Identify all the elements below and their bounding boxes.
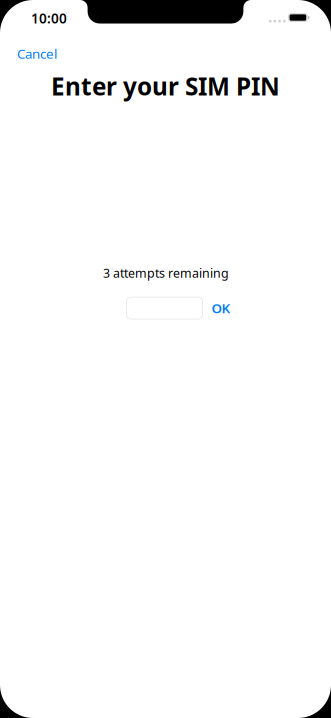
button[interactable]: SIM PIN (126, 297, 202, 319)
staticText: Cancel (17, 44, 57, 63)
staticText: 3 attempts remaining (103, 265, 229, 281)
staticText: 10:00 (31, 9, 67, 27)
button[interactable]: OK (202, 293, 240, 323)
staticText: Enter your SIM PIN (51, 69, 280, 103)
staticText: OK (211, 299, 230, 317)
button[interactable]: Cancel (0, 42, 71, 67)
